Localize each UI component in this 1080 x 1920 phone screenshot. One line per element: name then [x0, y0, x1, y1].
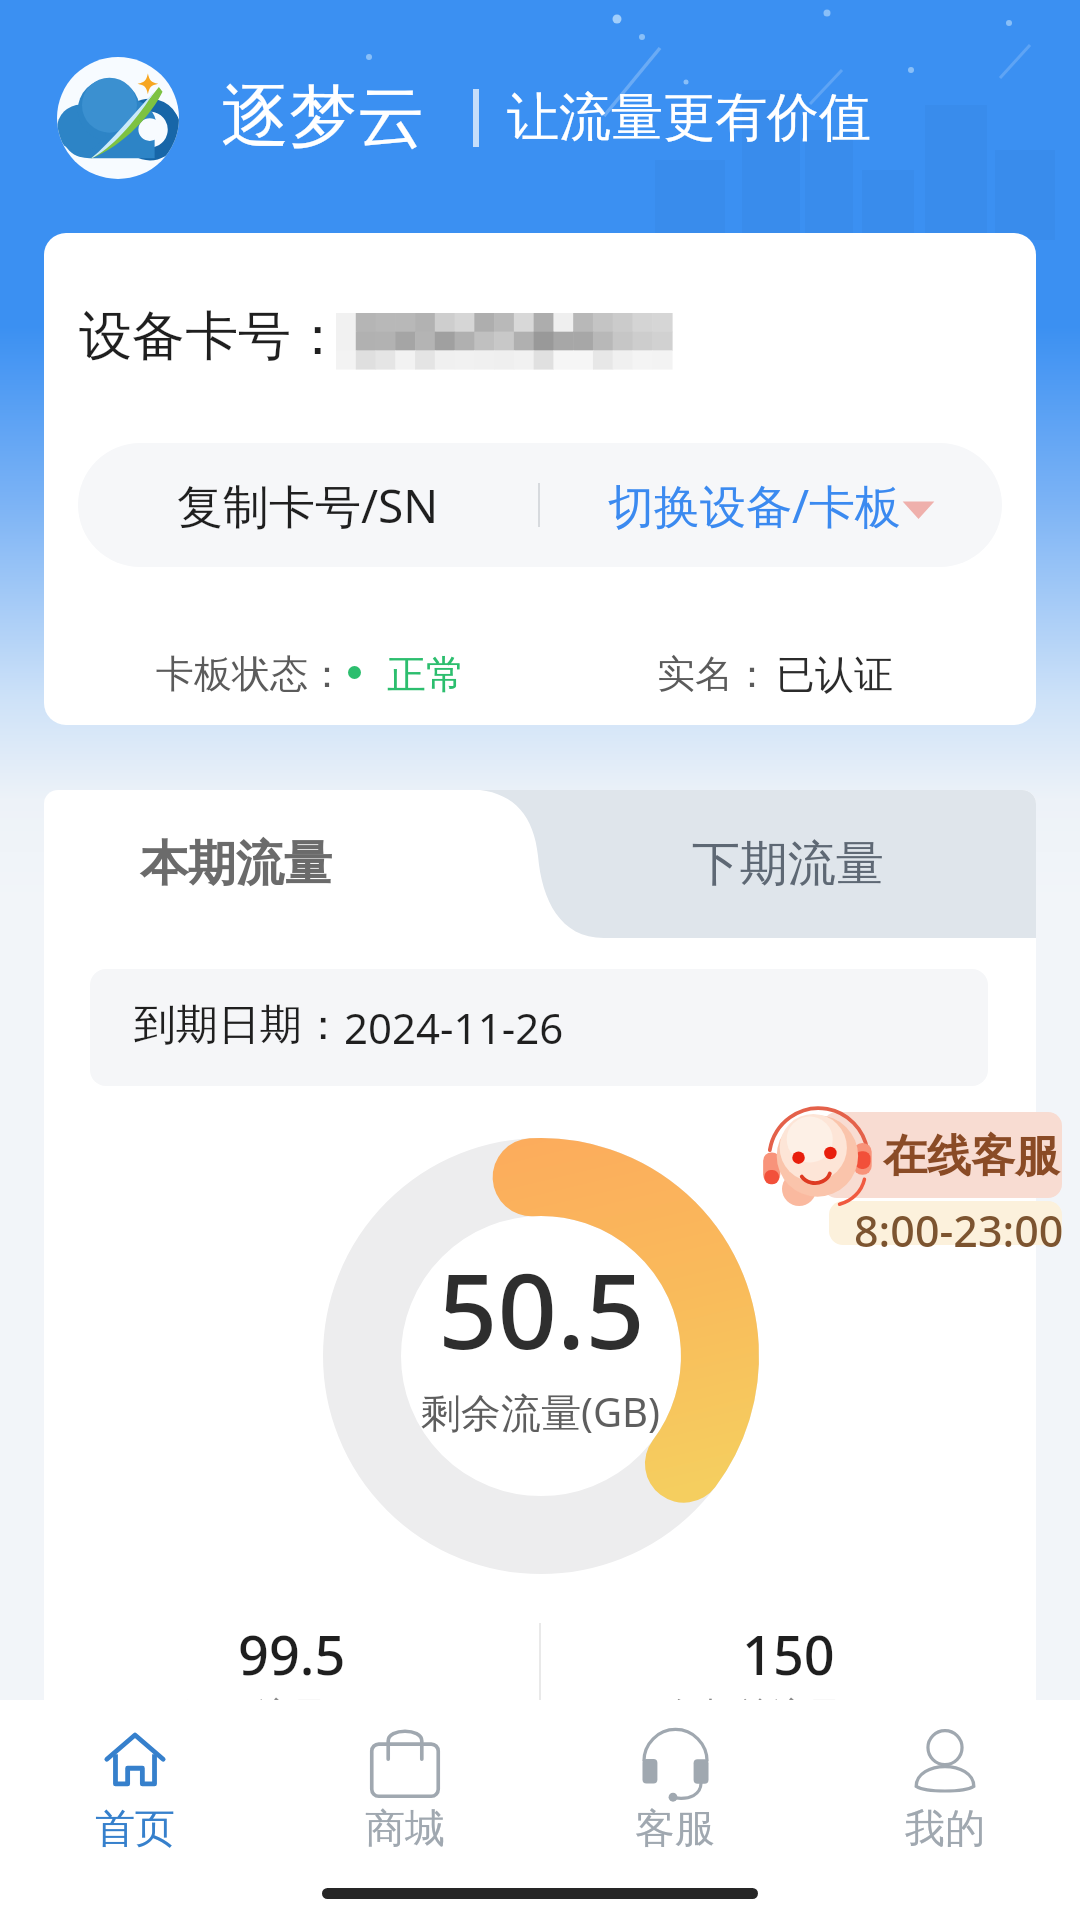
- staticText: 实名：: [657, 650, 771, 698]
- staticText: 已用流量(GB): [184, 1690, 400, 1710]
- staticText: 正常: [387, 650, 465, 699]
- staticText: 8:00-23:00: [854, 1201, 1064, 1260]
- staticText: 剩余流量(GB): [421, 1384, 661, 1439]
- staticText: 在线客服: [883, 1129, 1059, 1184]
- staticText: 50.5: [438, 1238, 645, 1380]
- staticText: 到期日期：: [134, 999, 344, 1052]
- staticText: 我的: [905, 1803, 985, 1853]
- staticText: 复制卡号/SN: [177, 474, 439, 537]
- staticText: 2024-11-26: [344, 999, 564, 1056]
- button[interactable]: 我的: [810, 1711, 1080, 1876]
- staticText: 已认证: [776, 650, 893, 699]
- staticText: 套餐总流量(GB): [663, 1690, 915, 1710]
- staticText: 客服: [635, 1803, 715, 1853]
- staticText: 首页: [95, 1803, 175, 1853]
- staticText: 99.5: [238, 1617, 346, 1691]
- button[interactable]: 复制卡号/SN: [78, 443, 538, 567]
- button[interactable]: 商城: [270, 1711, 540, 1876]
- staticText: 卡板状态：: [156, 650, 346, 698]
- staticText: 逐梦云: [221, 75, 425, 161]
- button[interactable]: 切换设备/卡板: [540, 443, 1002, 567]
- staticText: 切换设备/卡板: [608, 474, 902, 537]
- button[interactable]: 下期流量: [540, 790, 1036, 938]
- button[interactable]: 首页: [0, 1711, 270, 1876]
- staticText: 150: [742, 1617, 835, 1691]
- staticText: 下期流量: [692, 834, 884, 894]
- staticText: 让流量更有价值: [507, 85, 871, 151]
- button[interactable]: 在线客服: [755, 1100, 1080, 1250]
- staticText: 商城: [365, 1803, 445, 1853]
- staticText: 设备卡号：: [79, 303, 344, 370]
- button[interactable]: 客服: [540, 1711, 810, 1876]
- staticText: 本期流量: [140, 834, 332, 894]
- button[interactable]: 本期流量: [44, 790, 540, 938]
